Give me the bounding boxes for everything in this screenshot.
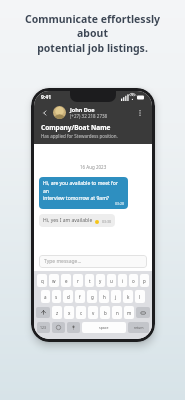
staticText: t [89, 278, 91, 284]
button[interactable]: l [135, 290, 145, 303]
staticText: 16 Aug 2023 [80, 164, 107, 170]
staticText: f [79, 294, 81, 300]
button[interactable]: u [107, 274, 116, 287]
staticText: h [103, 294, 106, 300]
button[interactable]: Numbers [37, 322, 50, 333]
button[interactable]: z [52, 306, 62, 319]
button[interactable]: Emoji [52, 322, 65, 333]
button[interactable]: g [87, 290, 97, 303]
button[interactable]: Return [128, 322, 149, 333]
button[interactable]: c [76, 306, 86, 319]
staticText: 123 [40, 325, 47, 330]
staticText: r [77, 278, 79, 284]
staticText: c [80, 310, 83, 316]
button[interactable]: Hi, yes I am available [39, 214, 115, 227]
staticText: q [41, 278, 44, 284]
button[interactable]: s [52, 290, 61, 303]
button[interactable]: v [88, 306, 98, 319]
button[interactable]: Voice input [67, 322, 80, 333]
staticText: return [134, 326, 144, 330]
button[interactable]: More options [134, 107, 146, 119]
button[interactable]: i [118, 274, 127, 287]
staticText: j [115, 294, 117, 300]
button[interactable]: Backspace [136, 307, 150, 318]
button[interactable]: j [111, 290, 121, 303]
staticText: a [44, 294, 47, 300]
staticText: k [127, 294, 130, 300]
button[interactable]: t [85, 274, 94, 287]
staticText: Type message... [44, 258, 82, 265]
button[interactable]: Back [40, 108, 50, 118]
staticText: 03:28 [115, 201, 124, 206]
button[interactable]: Type message... [39, 255, 147, 268]
button[interactable]: e [61, 274, 71, 287]
button[interactable]: h [99, 290, 109, 303]
staticText: g [91, 294, 94, 300]
button[interactable]: Shift [36, 307, 50, 318]
staticText: e [65, 278, 68, 284]
staticText: Has applied for Stewardess position. [41, 133, 118, 139]
button[interactable]: k [123, 290, 133, 303]
staticText: i [122, 278, 124, 284]
staticText: l [139, 294, 141, 300]
staticText: d [67, 294, 70, 300]
button[interactable]: x [64, 306, 74, 319]
staticText: 03:30 [102, 219, 111, 224]
button[interactable]: space [82, 322, 126, 333]
button[interactable]: Hi, are you available to meet for an int… [39, 177, 128, 209]
button[interactable]: o [129, 274, 138, 287]
staticText: John Doe [70, 106, 95, 113]
staticText: p [143, 278, 146, 284]
button[interactable]: f [75, 290, 85, 303]
staticText: n [116, 310, 119, 316]
staticText: b [104, 310, 107, 316]
staticText: v [92, 310, 95, 316]
staticText: s [55, 294, 58, 300]
staticText: space [99, 325, 109, 330]
staticText: w [52, 278, 56, 284]
staticText: o [132, 278, 135, 284]
staticText: u [110, 278, 113, 284]
staticText: 9:41 [41, 94, 51, 101]
button[interactable]: q [37, 274, 47, 287]
staticText: m [127, 310, 132, 316]
button[interactable]: p [140, 274, 149, 287]
staticText: Company/Boat Name [41, 123, 111, 132]
button[interactable]: m [124, 306, 134, 319]
staticText: potential job listings. [37, 41, 148, 55]
button[interactable]: b [100, 306, 110, 319]
button[interactable]: d [63, 290, 73, 303]
staticText: (+27) 32 218 2738 [70, 113, 108, 119]
button[interactable]: n [112, 306, 122, 319]
button[interactable]: r [73, 274, 83, 287]
button[interactable]: a [41, 290, 50, 303]
staticText: x [68, 310, 71, 316]
staticText: z [56, 310, 59, 316]
staticText: Hi, yes I am available [43, 217, 93, 224]
button[interactable]: w [49, 274, 59, 287]
staticText: y [99, 278, 102, 284]
staticText: Communicate effortlessly about [10, 12, 175, 40]
staticText: Hi, are you available to meet for an int… [43, 180, 124, 201]
button[interactable]: y [96, 274, 105, 287]
